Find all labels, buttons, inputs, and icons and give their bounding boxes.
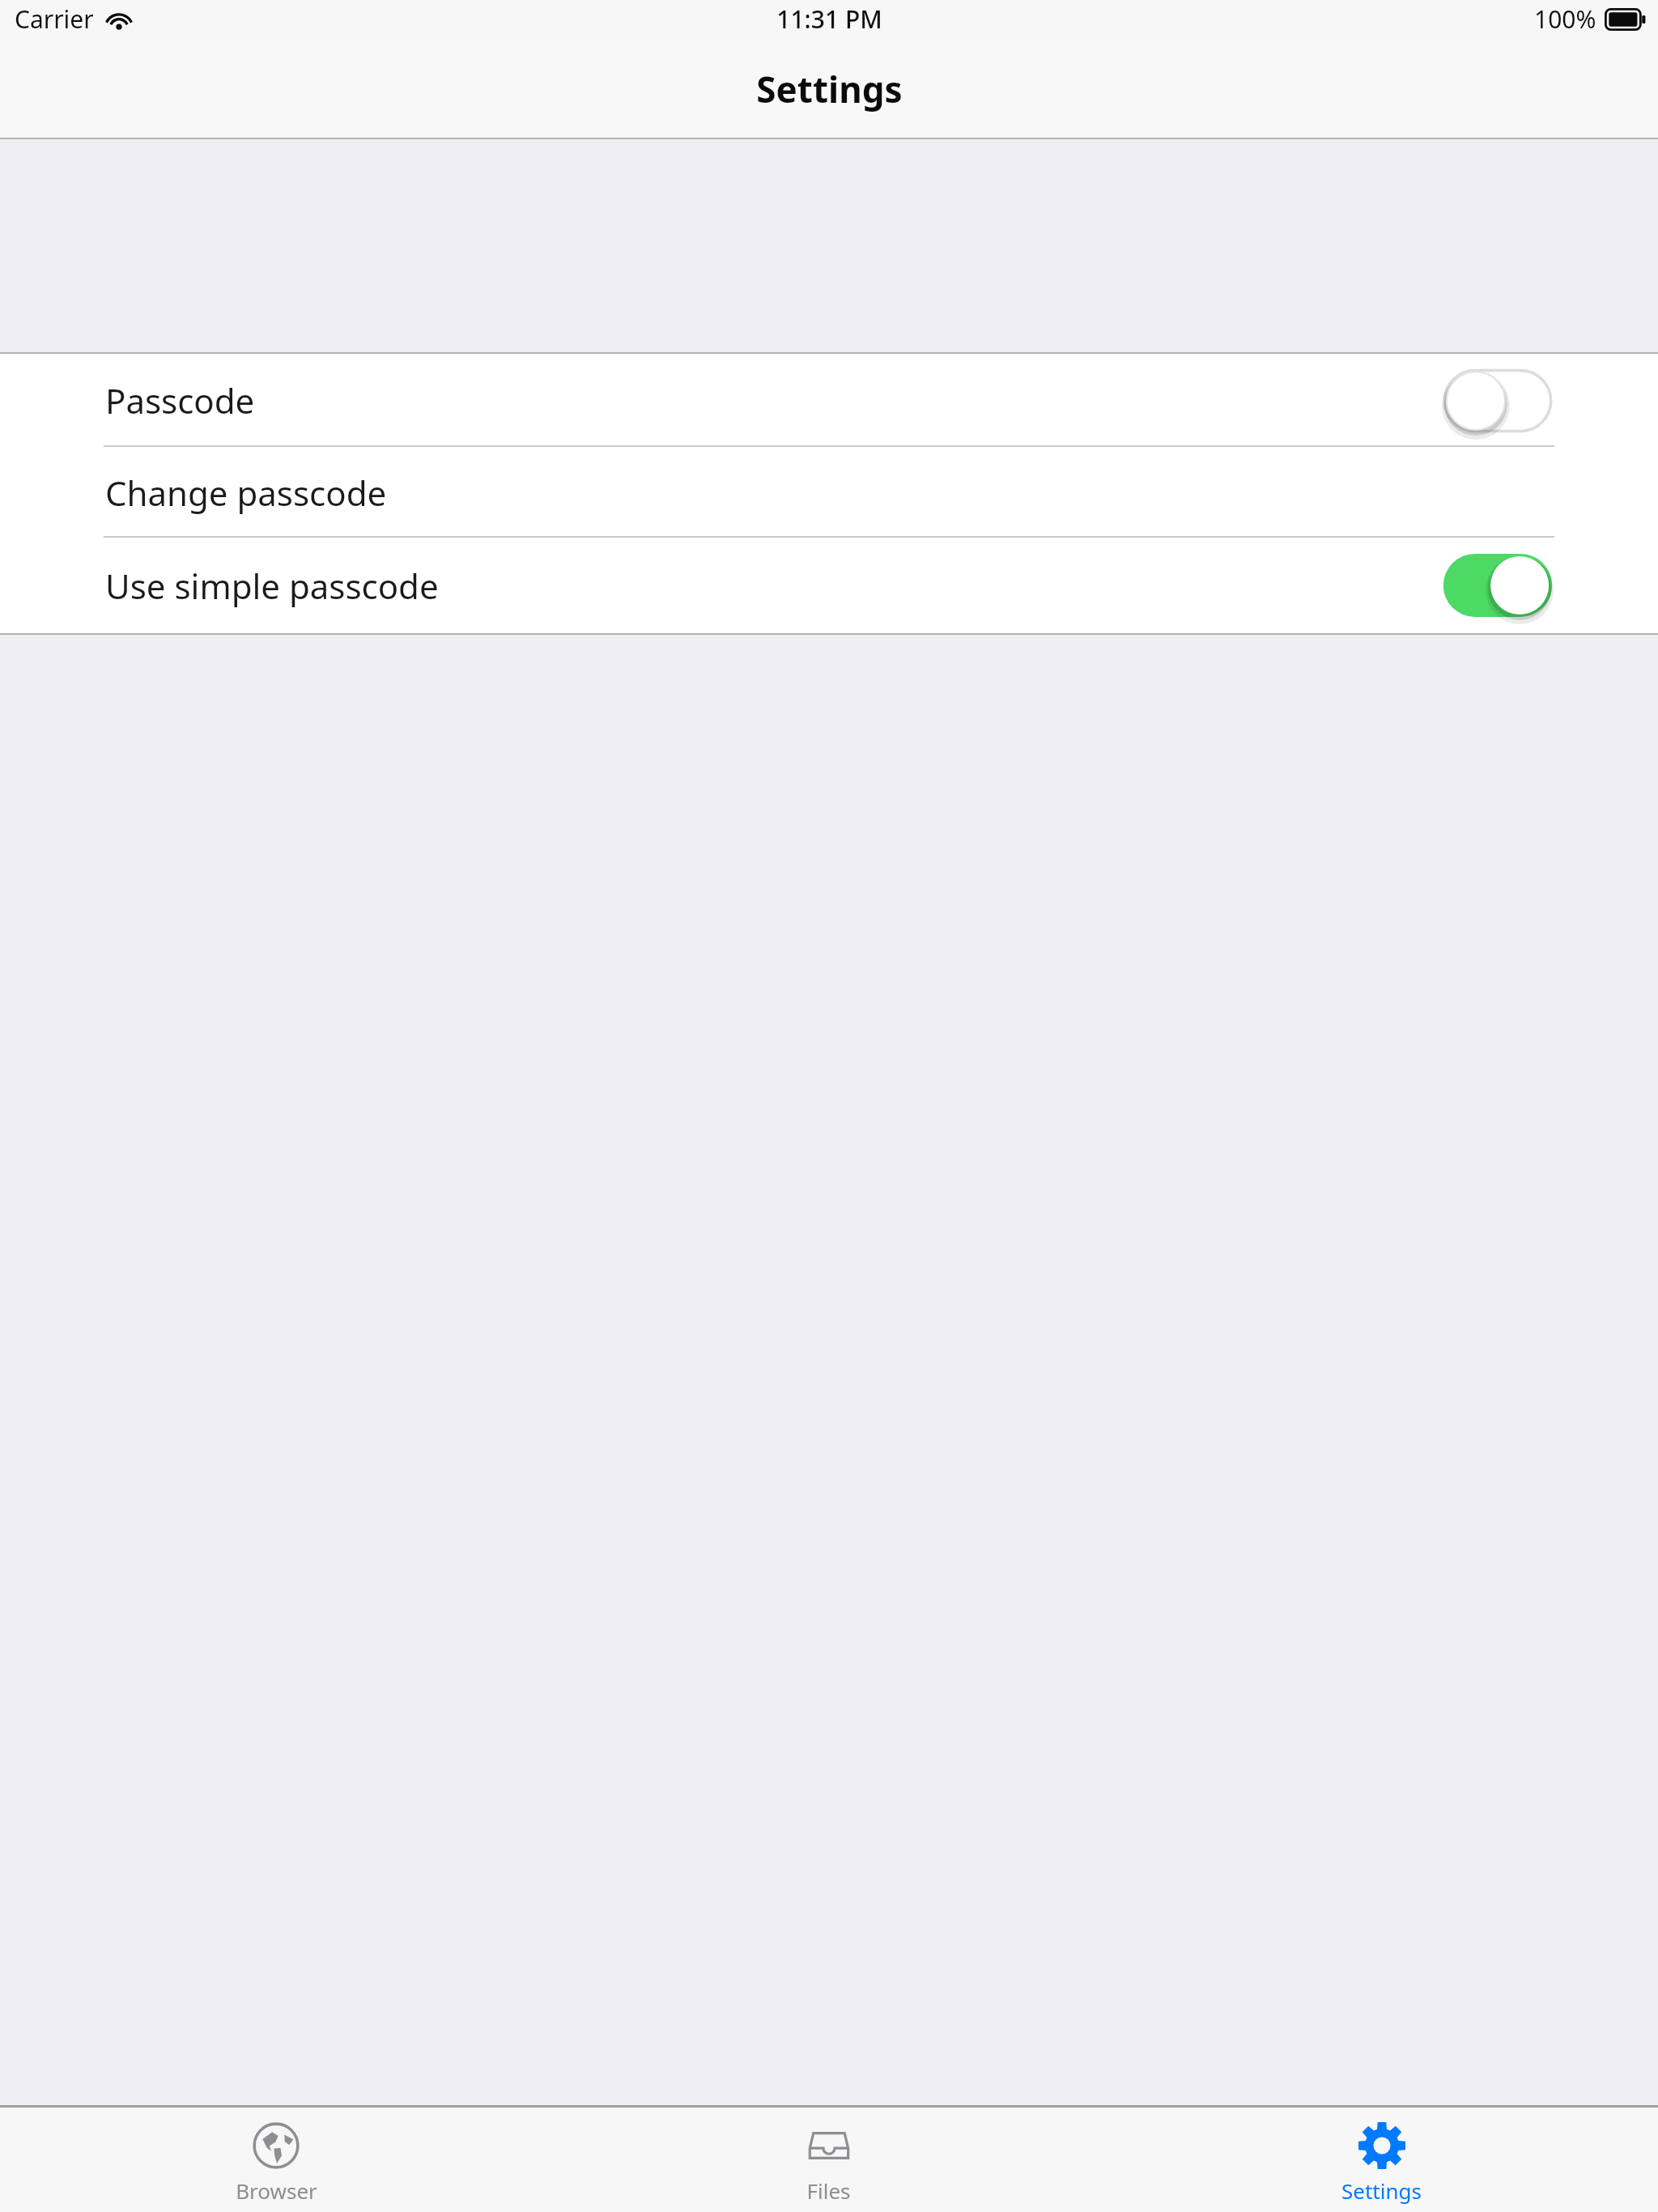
staticText: 100% [1534, 2, 1596, 36]
button[interactable]: Toggle on [1441, 551, 1554, 619]
staticText: Settings [756, 65, 903, 113]
button[interactable]: Passcode [0, 354, 1658, 447]
staticText: Change passcode [105, 470, 387, 516]
button[interactable]: Files [552, 2108, 1105, 2212]
button[interactable]: Browser [0, 2108, 552, 2212]
staticText: Files [806, 2176, 851, 2205]
staticText: Browser [236, 2176, 317, 2205]
button[interactable]: Toggle off [1441, 367, 1554, 435]
staticText: Use simple passcode [105, 563, 439, 609]
staticText: Passcode [105, 377, 255, 423]
staticText: Carrier [15, 2, 94, 36]
staticText: 11:31 PM [776, 2, 882, 36]
staticText: Settings [1341, 2176, 1422, 2205]
button[interactable]: Change passcode [0, 447, 1658, 538]
button[interactable]: Settings [1105, 2108, 1658, 2212]
button[interactable]: Use simple passcode [0, 538, 1658, 633]
